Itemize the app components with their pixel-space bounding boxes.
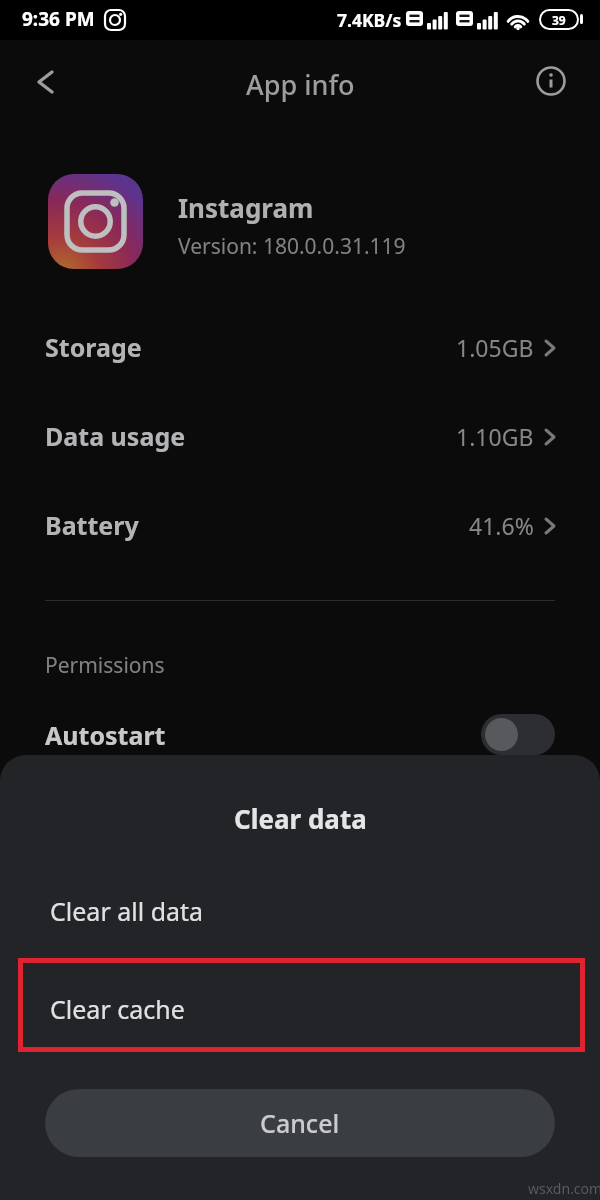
staticText: 9:36 PM [22,6,95,32]
staticText: Storage [45,330,142,364]
staticText: 1.05GB [456,332,534,363]
staticText: Instagram [178,190,314,225]
button[interactable]: Cancel [45,1089,555,1157]
staticText: Data usage [45,419,186,453]
button[interactable]: Data usage [0,402,600,470]
button[interactable]: Storage [0,313,600,381]
button[interactable]: Autostart [0,700,600,770]
staticText: Clear cache [50,992,185,1026]
staticText: wsxdn.com [528,1179,600,1198]
button[interactable]: Clear cache [0,967,600,1051]
staticText: 1.10GB [456,421,534,452]
button[interactable]: Battery [0,491,600,559]
staticText: Version: 180.0.0.31.119 [178,232,406,261]
staticText: Autostart [45,718,166,752]
button[interactable] [528,58,574,104]
staticText: Clear all data [50,894,204,928]
staticText: Clear data [234,801,367,836]
staticText: 39 [552,12,566,28]
staticText: Battery [45,508,139,542]
staticText: Permissions [45,651,165,680]
staticText: App info [246,66,355,103]
button[interactable]: Clear all data [0,873,600,949]
staticText: Cancel [260,1106,340,1140]
staticText: 41.6% [469,510,534,541]
button[interactable] [24,60,72,104]
staticText: 7.4KB/s [337,8,402,32]
